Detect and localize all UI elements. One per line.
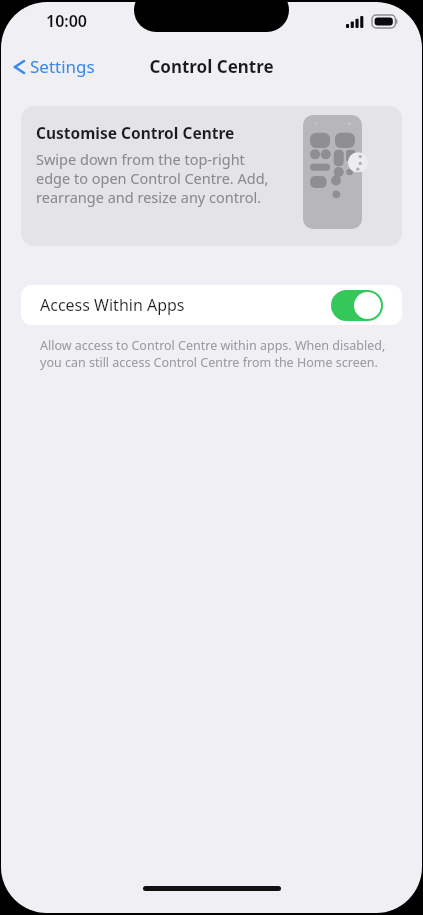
button[interactable]: Customise Control Centre xyxy=(21,106,402,246)
staticText: Customise Control Centre xyxy=(36,122,235,143)
button[interactable]: Settings xyxy=(1,51,103,82)
button[interactable]: Access Within Apps toggle, on xyxy=(331,290,383,321)
staticText: Allow access to Control Centre within ap… xyxy=(40,337,386,371)
staticText: Settings xyxy=(30,55,95,78)
staticText: 10:00 xyxy=(46,10,88,32)
staticText: Access Within Apps xyxy=(40,294,331,316)
staticText: Swipe down from the top-right edge to op… xyxy=(36,149,278,208)
button[interactable]: Access Within Apps xyxy=(21,285,402,325)
staticText: Control Centre xyxy=(149,55,274,78)
